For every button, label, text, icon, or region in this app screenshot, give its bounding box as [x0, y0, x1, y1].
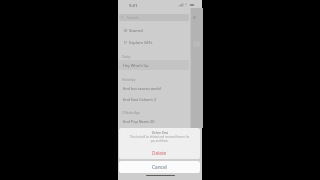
button[interactable]: Hey What's Up [123, 60, 189, 70]
button[interactable]: find Pop Name 20 [123, 116, 189, 126]
staticText: Today [122, 55, 131, 59]
button[interactable]: Search [119, 14, 189, 21]
staticText: Starred [129, 28, 143, 33]
button[interactable]: Starred [124, 25, 189, 36]
button[interactable]: find hot sauces world [123, 83, 189, 93]
staticText: Hey What's Up [123, 63, 149, 68]
button[interactable]: find East Column 2 [123, 94, 189, 104]
staticText: 3 Weeks Ago [122, 111, 140, 115]
staticText: find hot sauces world [123, 86, 161, 91]
staticText: Yesterday [122, 78, 136, 82]
staticText: 9:41 [129, 3, 138, 9]
button[interactable]: Delete [119, 146, 200, 159]
staticText: Delete [152, 150, 167, 156]
button[interactable]: Cancel [119, 161, 200, 173]
staticText: Delete Chat [152, 131, 168, 135]
staticText: find Pop Name 20 [123, 119, 155, 124]
staticText: Cancel [152, 164, 167, 170]
staticText: This chat will be deleted and removed fo… [129, 135, 190, 143]
button[interactable]: Explore GIFs [124, 37, 189, 48]
staticText: Explore GIFs [129, 40, 153, 45]
staticText: find East Column 2 [123, 97, 157, 102]
staticText: Search [127, 15, 139, 20]
